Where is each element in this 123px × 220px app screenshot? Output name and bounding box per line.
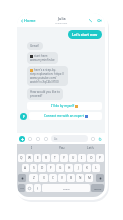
- staticText: C: [52, 176, 55, 180]
- staticText: return: [94, 187, 102, 190]
- button[interactable]: Z: [29, 174, 38, 182]
- button[interactable]: Add: [19, 136, 25, 142]
- button[interactable]: J: [74, 164, 82, 172]
- button[interactable]: Let's start now: [68, 30, 102, 39]
- button[interactable]: O: [87, 154, 95, 162]
- staticText: step explanation: https://: [30, 72, 65, 76]
- staticText: B: [70, 176, 73, 180]
- button[interactable]: X: [39, 174, 48, 182]
- staticText: You: [59, 146, 65, 150]
- button[interactable]: N: [76, 174, 84, 182]
- button[interactable]: Microphone: [43, 136, 49, 142]
- staticText: I: [31, 146, 33, 150]
- button[interactable]: Emoji: [90, 136, 96, 142]
- button[interactable]: U: [69, 154, 77, 162]
- button[interactable]: Numbers: [18, 184, 25, 192]
- button[interactable]: I: [17, 144, 47, 152]
- button[interactable]: Let's: [76, 144, 105, 152]
- button[interactable]: Voice input: [34, 184, 41, 192]
- staticText: E: [37, 156, 39, 160]
- button[interactable]: I: [78, 154, 86, 162]
- staticText: U: [72, 156, 75, 160]
- button[interactable]: R: [42, 154, 50, 162]
- staticText: Home: [24, 18, 36, 23]
- button[interactable]: B: [67, 174, 75, 182]
- button[interactable]: Emoji keyboard: [26, 184, 33, 192]
- staticText: Y: [63, 156, 65, 160]
- staticText: 123: [20, 187, 24, 190]
- button[interactable]: L: [92, 164, 100, 172]
- button[interactable]: return: [91, 184, 104, 192]
- button[interactable]: Q: [18, 154, 25, 162]
- button[interactable]: Video call: [96, 17, 103, 24]
- staticText: D: [41, 166, 44, 170]
- button[interactable]: E: [34, 154, 41, 162]
- staticText: I: [81, 156, 83, 160]
- staticText: M: [88, 176, 91, 180]
- button[interactable]: Gallery: [35, 136, 41, 142]
- button[interactable]: V: [58, 174, 66, 182]
- button[interactable]: T: [51, 154, 59, 162]
- button[interactable]: H: [65, 164, 73, 172]
- button[interactable]: A: [22, 164, 29, 172]
- button[interactable]: Aa: [51, 135, 88, 142]
- staticText: L: [95, 166, 97, 170]
- button[interactable]: Like: [97, 136, 103, 142]
- staticText: Let's: [87, 146, 94, 150]
- staticText: space: [63, 187, 70, 190]
- staticText: F: [23, 114, 25, 119]
- button[interactable]: K: [83, 164, 91, 172]
- button[interactable]: Y: [60, 154, 68, 162]
- button[interactable]: C: [49, 174, 57, 182]
- staticText: R: [45, 156, 47, 160]
- button[interactable]: Shift: [18, 174, 26, 182]
- button[interactable]: S: [30, 164, 37, 172]
- staticText: N: [79, 176, 82, 180]
- staticText: W: [28, 156, 31, 160]
- staticText: Z: [33, 176, 35, 180]
- staticText: J: [78, 166, 79, 170]
- staticText: www.youtube.com/: [30, 76, 57, 80]
- staticText: Aa: [54, 137, 58, 141]
- button[interactable]: You: [47, 144, 76, 152]
- staticText: Active now: [55, 21, 68, 24]
- staticText: V: [61, 176, 63, 180]
- staticText: Let's start now: [72, 32, 98, 37]
- staticText: S: [33, 166, 35, 170]
- staticText: O: [90, 156, 93, 160]
- staticText: Great!: [30, 44, 40, 48]
- staticText: start here:: [34, 54, 48, 58]
- staticText: H: [68, 166, 71, 170]
- staticText: watch?v=XqC4k3f100: [30, 80, 59, 84]
- button[interactable]: Camera: [27, 136, 33, 142]
- staticText: How would you like to: [30, 90, 60, 94]
- button[interactable]: Voice call: [87, 17, 94, 24]
- button[interactable]: M: [85, 174, 93, 182]
- staticText: P: [99, 156, 101, 160]
- staticText: A: [24, 166, 27, 170]
- staticText: X: [43, 176, 45, 180]
- staticText: G: [59, 166, 62, 170]
- staticText: Julia: [58, 16, 66, 21]
- staticText: www.myminfin.be: [30, 58, 55, 62]
- button[interactable]: W: [26, 154, 33, 162]
- button[interactable]: P: [96, 154, 104, 162]
- button[interactable]: G: [56, 164, 64, 172]
- staticText: I'll do by myself: [51, 104, 74, 108]
- button[interactable]: D: [38, 164, 46, 172]
- button[interactable]: Backspace: [96, 174, 104, 182]
- button[interactable]: I'll do by myself: [27, 102, 102, 110]
- staticText: here's a step-by-: [34, 68, 57, 72]
- button[interactable]: Connect me with an expert: [29, 112, 102, 120]
- staticText: K: [86, 166, 88, 170]
- staticText: proceed?: [30, 94, 43, 98]
- button[interactable]: F: [47, 164, 55, 172]
- button[interactable]: space: [42, 184, 90, 192]
- button[interactable]: Home: [19, 17, 37, 24]
- staticText: T: [54, 156, 56, 160]
- staticText: Q: [20, 156, 23, 160]
- staticText: Connect me with an expert: [44, 114, 84, 118]
- staticText: F: [50, 166, 52, 170]
